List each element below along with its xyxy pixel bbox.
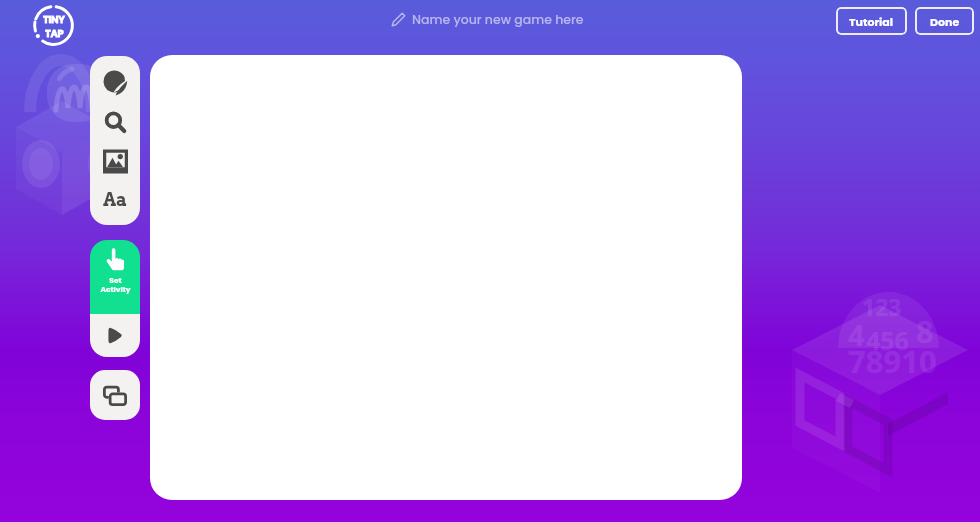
staticText: Name your new game here bbox=[412, 11, 584, 28]
button[interactable]: Sticker bbox=[90, 65, 140, 99]
staticText: Aa bbox=[103, 189, 128, 211]
staticText: 78910 bbox=[848, 340, 937, 382]
button[interactable]: Text bbox=[90, 183, 140, 217]
staticText: Tutorial bbox=[849, 14, 894, 29]
button[interactable]: Duplicate page bbox=[90, 370, 140, 420]
button[interactable]: Search bbox=[90, 105, 140, 139]
staticText: 8 bbox=[916, 310, 934, 352]
button[interactable]: Set Activity bbox=[90, 240, 140, 314]
button[interactable]: Game canvas bbox=[150, 55, 742, 500]
button[interactable]: Done bbox=[915, 7, 974, 35]
button[interactable]: Name your new game here bbox=[392, 11, 584, 28]
button[interactable]: TinyTap home bbox=[31, 3, 76, 48]
staticText: TINY bbox=[43, 12, 65, 26]
staticText: Set Activity bbox=[100, 275, 131, 295]
staticText: 123 bbox=[862, 291, 902, 322]
staticText: 4 bbox=[848, 315, 865, 354]
staticText: 456 bbox=[866, 323, 909, 357]
staticText: Done bbox=[930, 14, 960, 29]
staticText: TAP bbox=[45, 26, 64, 40]
button[interactable]: Tutorial bbox=[836, 7, 907, 35]
button[interactable]: Play bbox=[90, 314, 140, 357]
button[interactable]: Image bbox=[90, 144, 140, 178]
